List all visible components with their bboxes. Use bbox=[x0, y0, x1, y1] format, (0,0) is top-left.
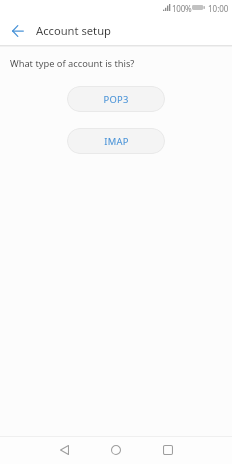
button[interactable]: Back bbox=[4, 17, 32, 45]
staticText: 100% bbox=[172, 3, 192, 14]
button[interactable]: IMAP bbox=[67, 128, 165, 154]
staticText: POP3 bbox=[103, 93, 129, 106]
staticText: What type of account is this? bbox=[10, 57, 135, 70]
staticText: IMAP bbox=[104, 135, 129, 148]
staticText: Account setup bbox=[36, 23, 111, 38]
staticText: 10:00 bbox=[208, 3, 229, 14]
button[interactable]: POP3 bbox=[67, 86, 165, 112]
button[interactable]: Home bbox=[101, 437, 131, 463]
button[interactable]: Recents bbox=[153, 437, 183, 463]
button[interactable]: Back bbox=[49, 437, 79, 463]
